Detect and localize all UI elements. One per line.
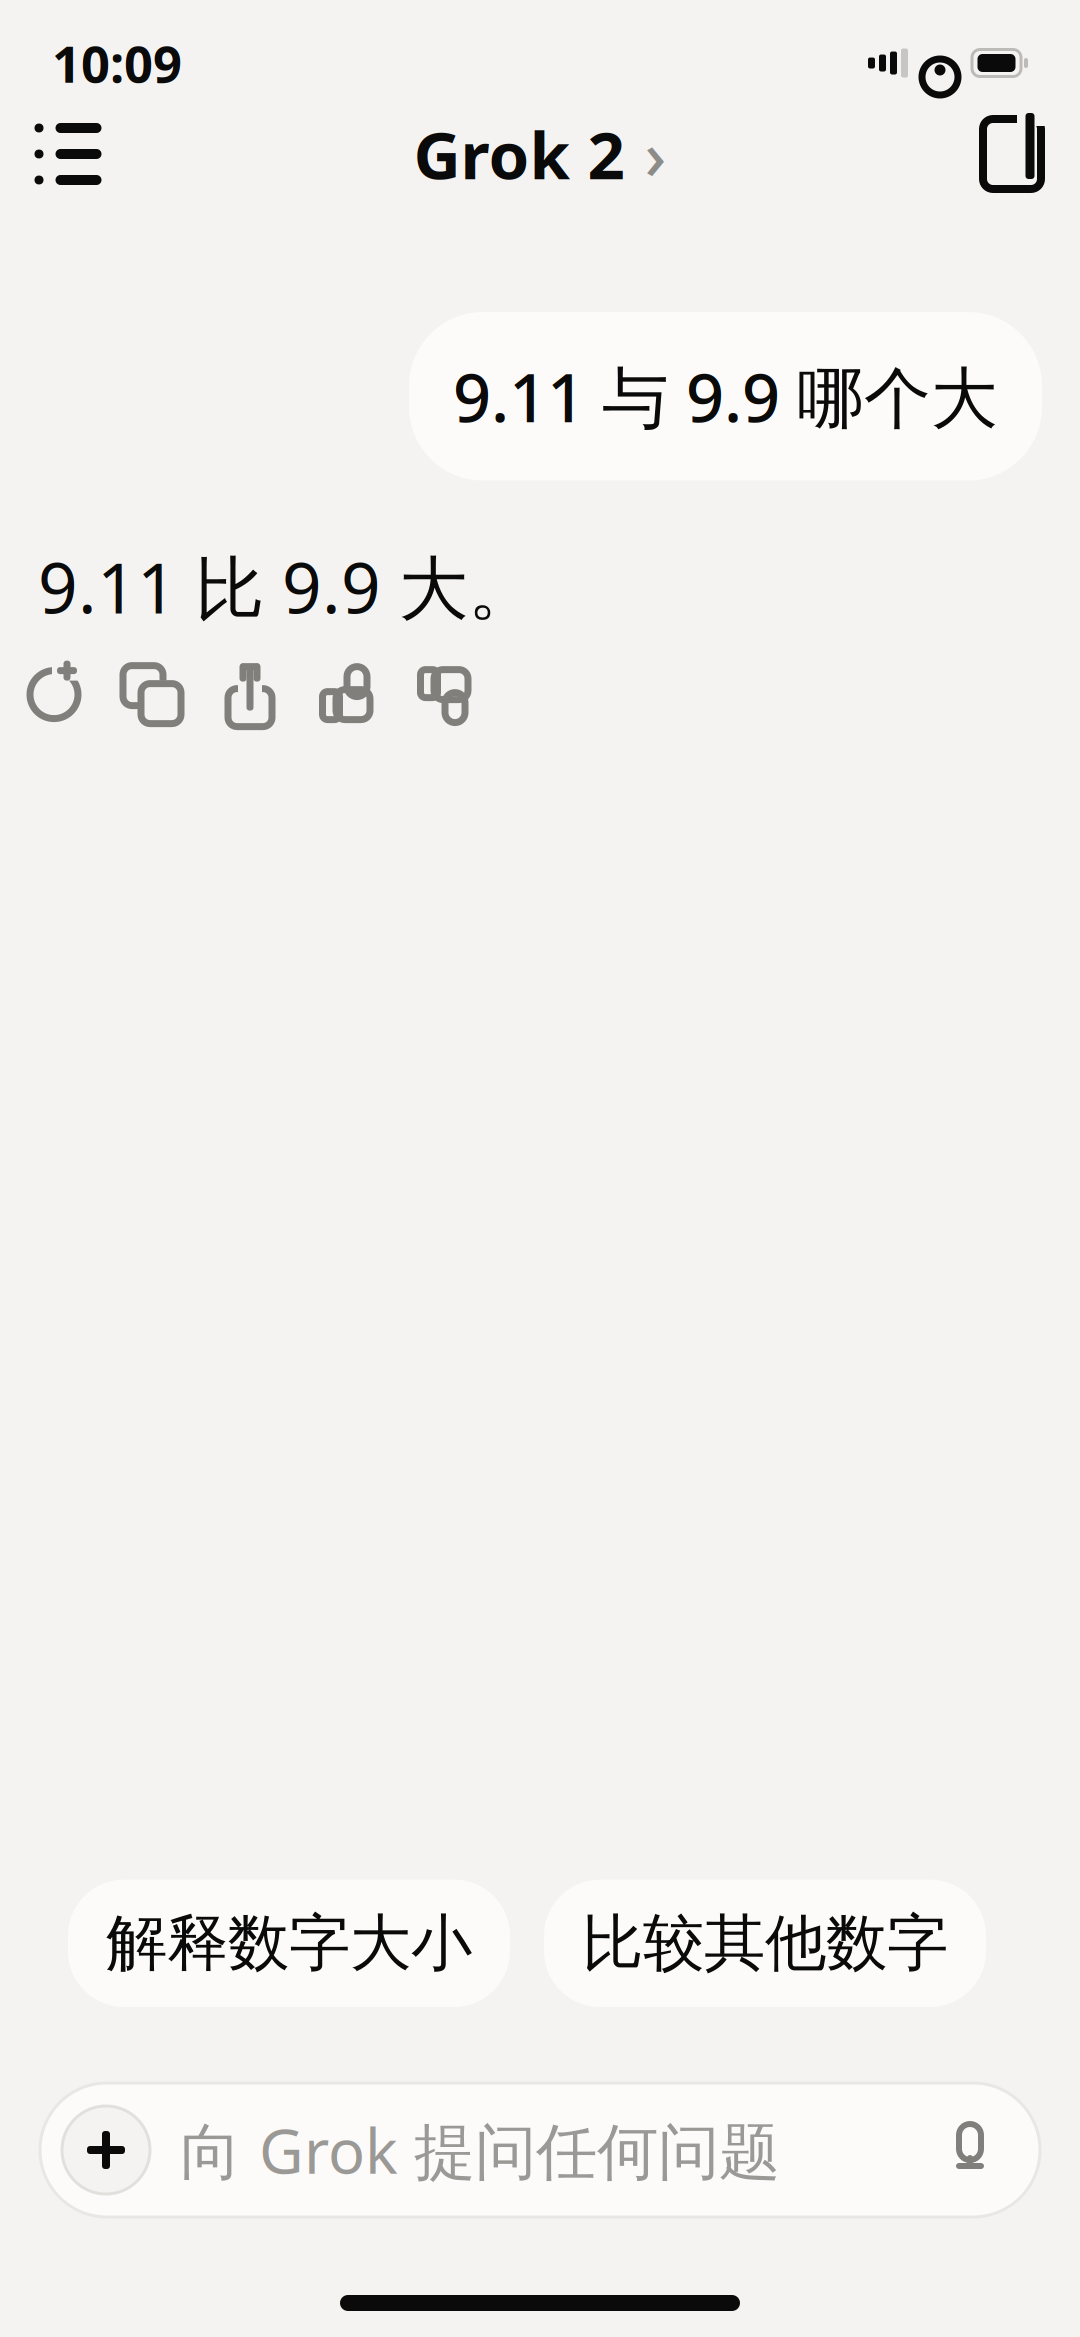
button[interactable]: New chat	[964, 106, 1060, 202]
staticText: 向 Grok 提问任何问题	[180, 2109, 780, 2191]
button[interactable]: Regenerate	[14, 659, 94, 731]
button[interactable]: Share	[210, 659, 290, 731]
button[interactable]: Bad response	[406, 659, 486, 731]
staticText: Grok 2	[413, 111, 624, 197]
button[interactable]: Grok 2	[413, 110, 666, 198]
button[interactable]: Add attachment	[62, 2106, 150, 2194]
staticText: ›	[644, 110, 666, 198]
staticText: 解释数字大小	[106, 1906, 472, 1981]
staticText: 9.11 比 9.9 大。	[38, 540, 537, 633]
button[interactable]: Voice input	[932, 2112, 1008, 2188]
staticText: 10:09	[52, 29, 182, 97]
staticText: 比较其他数字	[582, 1906, 948, 1981]
button[interactable]: 解释数字大小	[68, 1880, 510, 2007]
button[interactable]: Good response	[308, 659, 388, 731]
button[interactable]: 比较其他数字	[544, 1880, 986, 2007]
button[interactable]: Copy	[112, 659, 192, 731]
staticText: 9.11 与 9.9 哪个大	[453, 352, 998, 440]
button[interactable]: Chat history	[20, 106, 116, 202]
